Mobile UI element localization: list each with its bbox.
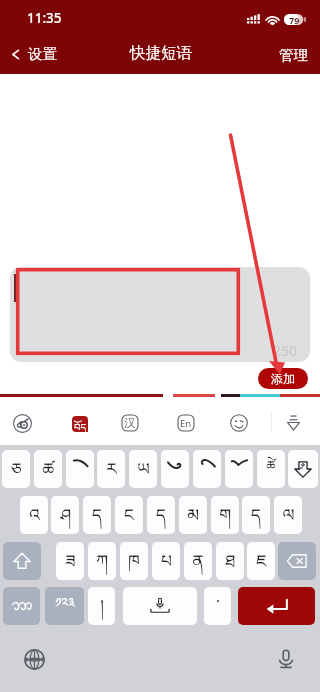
button[interactable]: ད [83, 496, 111, 534]
staticText: 快捷短语 [130, 43, 192, 63]
staticText: ། [100, 587, 104, 625]
staticText: 设置 [28, 45, 57, 63]
staticText: ཤ [60, 496, 71, 534]
button[interactable]: ཟ [56, 542, 84, 580]
staticText: ཟ [65, 542, 76, 580]
staticText: ད [92, 496, 102, 534]
button[interactable]: Enter [238, 587, 315, 625]
staticText: En [180, 417, 192, 430]
button[interactable]: 设置 [0, 36, 67, 74]
button[interactable]: Chinese input [116, 409, 144, 437]
button[interactable]: Handwriting [8, 409, 36, 437]
button[interactable]: ད [242, 496, 270, 534]
staticText: མ [187, 496, 199, 534]
staticText: 11:35 [27, 9, 62, 27]
staticText: ད [156, 496, 166, 534]
button[interactable]: Emoji [225, 409, 253, 437]
button[interactable]: Gigu [193, 450, 221, 488]
button[interactable]: མ [179, 496, 207, 534]
button[interactable]: ཡ [129, 450, 157, 488]
staticText: ར [106, 450, 117, 488]
button[interactable]: ། [88, 587, 115, 625]
button[interactable]: ག [211, 496, 239, 534]
button[interactable]: ང [115, 496, 143, 534]
staticText: ད [251, 496, 261, 534]
button[interactable]: འ [20, 496, 48, 534]
button[interactable]: ཐ [216, 542, 244, 580]
button[interactable]: Naro [225, 450, 253, 488]
button[interactable]: ཚེ [257, 450, 285, 488]
staticText: 79 [289, 14, 300, 25]
staticText: ཚེ [266, 451, 276, 488]
button[interactable]: ར [97, 450, 125, 488]
staticText: ག [219, 496, 231, 534]
staticText: ཡ [137, 450, 150, 488]
button[interactable]: ༡༢༣ [45, 587, 84, 625]
button[interactable]: Shift [3, 542, 41, 580]
staticText: ཅ [11, 450, 22, 488]
button[interactable]: 管理 [267, 36, 320, 74]
button[interactable]: Change input method [20, 645, 48, 673]
button[interactable]: Symbols [3, 587, 40, 625]
button[interactable]: ལ [274, 496, 302, 534]
staticText: 250 [273, 341, 298, 360]
button[interactable]: English input [172, 409, 200, 437]
button[interactable]: ཁ [120, 542, 148, 580]
button[interactable]: པ [152, 542, 180, 580]
button[interactable]: 添加 [258, 368, 308, 389]
button[interactable]: ཚ [34, 450, 62, 488]
staticText: ཇ [256, 542, 267, 580]
button[interactable]: ཅ [2, 450, 30, 488]
button[interactable]: Voice input [272, 645, 300, 673]
button[interactable]: ཤ [51, 496, 79, 534]
button[interactable]: ་ [204, 587, 231, 625]
staticText: ལ [282, 496, 295, 534]
button[interactable]: Hide keyboard [279, 408, 308, 437]
staticText: འ [29, 496, 40, 534]
button[interactable]: Space [123, 587, 197, 625]
button[interactable]: Zhabkyu [161, 450, 189, 488]
staticText: ཚ [42, 450, 55, 488]
staticText: བོད [74, 416, 87, 432]
staticText: 管理 [279, 46, 308, 64]
button[interactable]: ཇ [247, 542, 275, 580]
button[interactable]: ད [147, 496, 175, 534]
button[interactable]: Tibetan input [72, 416, 88, 432]
staticText: 添加 [271, 371, 295, 386]
button[interactable]: Insert [288, 450, 318, 488]
button[interactable]: ཀ [88, 542, 116, 580]
staticText: ཐ [225, 542, 236, 580]
button[interactable]: Backspace [278, 542, 316, 580]
button[interactable]: ན [184, 542, 212, 580]
staticText: ༡༢༣ [55, 588, 75, 625]
button[interactable]: Drengbu [66, 450, 94, 488]
staticText: པ [161, 542, 172, 580]
staticText: ཀ [96, 542, 108, 580]
staticText: ་ [216, 587, 220, 625]
staticText: ང [124, 496, 134, 534]
staticText: 汉 [124, 416, 136, 430]
staticText: ན [192, 542, 204, 580]
staticText: ཁ [128, 542, 140, 580]
button[interactable]: 250 [10, 267, 310, 362]
